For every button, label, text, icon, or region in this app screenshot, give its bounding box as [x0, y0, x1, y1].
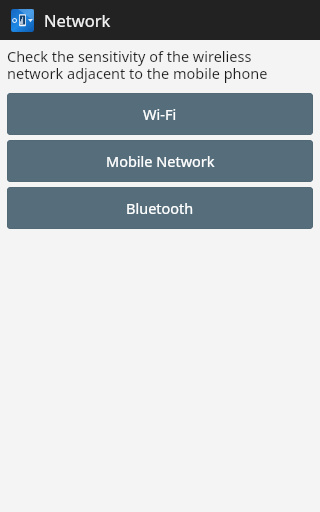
staticText: Wi-Fi	[143, 104, 177, 124]
staticText: Bluetooth	[126, 198, 194, 218]
button[interactable]: Mobile Network	[7, 140, 313, 182]
button[interactable]: Wi-Fi	[7, 93, 313, 135]
staticText: Check the sensitivity of the wireliess n…	[7, 46, 310, 83]
staticText: Mobile Network	[106, 151, 215, 171]
staticText: Network	[44, 9, 111, 31]
button[interactable]: Bluetooth	[7, 187, 313, 229]
other: Network app icon	[11, 9, 34, 32]
